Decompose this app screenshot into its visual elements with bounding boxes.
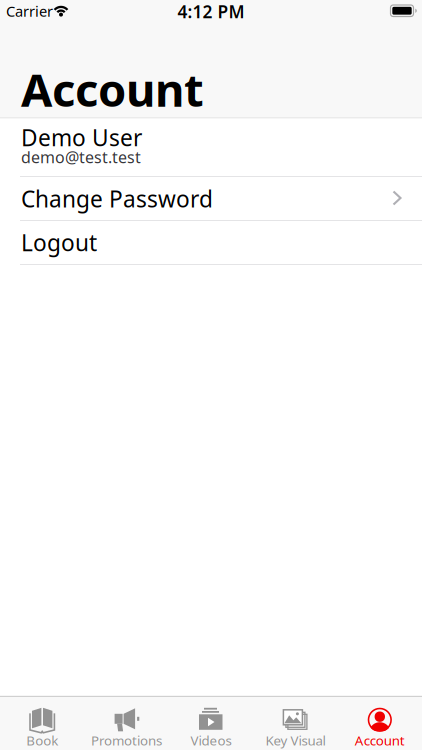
- button[interactable]: Book: [0, 696, 84, 750]
- button[interactable]: Promotions: [84, 696, 169, 750]
- staticText: Change Password: [21, 184, 213, 214]
- button[interactable]: Logout: [0, 221, 422, 264]
- staticText: Account: [21, 59, 204, 119]
- staticText: 4:12 PM: [177, 0, 244, 23]
- staticText: Logout: [21, 227, 97, 257]
- button[interactable]: Account: [338, 696, 422, 750]
- staticText: Carrier: [6, 1, 53, 21]
- staticText: Videos: [190, 731, 231, 749]
- staticText: Account: [355, 731, 405, 749]
- button[interactable]: Demo User: [0, 118, 422, 176]
- button[interactable]: Key Visual: [253, 696, 338, 750]
- staticText: Key Visual: [265, 731, 325, 749]
- staticText: Demo User: [21, 122, 142, 153]
- staticText: Promotions: [91, 731, 162, 749]
- staticText: Book: [26, 731, 58, 749]
- staticText: demo@test.test: [21, 146, 141, 168]
- button[interactable]: Change Password: [0, 177, 422, 220]
- button[interactable]: Videos: [169, 696, 253, 750]
